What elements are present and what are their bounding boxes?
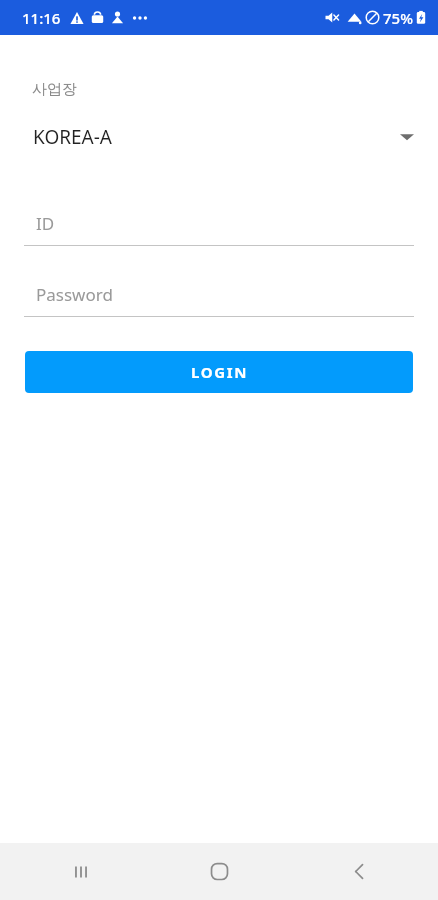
button[interactable]: KOREA-A	[0, 117, 438, 157]
button[interactable]: Password	[24, 272, 414, 316]
staticText: 11:16	[22, 8, 61, 28]
button[interactable]: ID	[24, 201, 414, 245]
staticText: Password	[36, 283, 113, 306]
staticText: KOREA-A	[33, 124, 113, 150]
staticText: LOGIN	[191, 362, 248, 382]
staticText: ID	[36, 212, 55, 235]
button[interactable]: Back	[292, 843, 438, 900]
button[interactable]: Recents	[0, 843, 146, 900]
button[interactable]: LOGIN	[25, 351, 413, 393]
staticText: 75%	[383, 8, 413, 28]
button[interactable]: Home	[146, 843, 292, 900]
staticText: 사업장	[32, 80, 77, 99]
